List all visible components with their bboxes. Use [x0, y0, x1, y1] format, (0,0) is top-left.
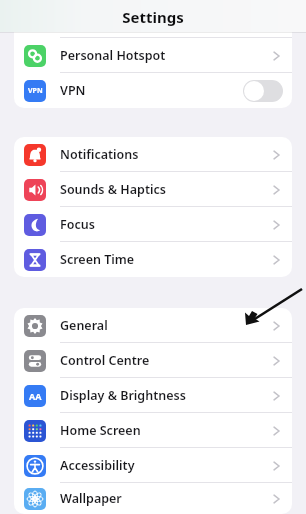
button[interactable]: General — [14, 308, 292, 343]
button[interactable]: Control Centre — [14, 343, 292, 378]
staticText: Accessibility — [60, 457, 135, 474]
button[interactable]: VPN — [14, 73, 292, 108]
staticText: Focus — [60, 216, 95, 233]
button[interactable]: Notifications — [14, 137, 292, 172]
button[interactable]: Accessibility — [14, 448, 292, 483]
staticText: Mobile Data — [60, 12, 134, 29]
button[interactable]: Mobile Data — [14, 3, 292, 38]
staticText: Notifications — [60, 146, 139, 163]
staticText: Screen Time — [60, 251, 135, 268]
button[interactable]: Personal Hotspot — [14, 38, 292, 73]
staticText: Display & Brightness — [60, 387, 186, 404]
button[interactable]: VPN toggle — [243, 80, 283, 102]
button[interactable]: Focus — [14, 207, 292, 242]
staticText: General — [60, 317, 108, 334]
staticText: Settings — [122, 7, 184, 27]
staticText: Wallpaper — [60, 490, 122, 507]
staticText: Control Centre — [60, 352, 150, 369]
button[interactable]: AA — [14, 378, 292, 413]
button[interactable]: Home Screen — [14, 413, 292, 448]
staticText: AA — [29, 390, 42, 402]
button[interactable]: Sounds & Haptics — [14, 172, 292, 207]
button[interactable]: Screen Time — [14, 242, 292, 277]
button[interactable]: Wallpaper — [14, 483, 292, 514]
staticText: Sounds & Haptics — [60, 181, 166, 198]
staticText: Home Screen — [60, 422, 141, 439]
staticText: Personal Hotspot — [60, 47, 166, 64]
staticText: VPN — [28, 86, 43, 96]
staticText: VPN — [60, 82, 86, 99]
